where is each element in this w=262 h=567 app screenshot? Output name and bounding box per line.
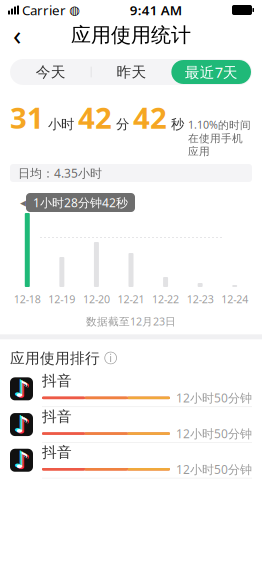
staticText: 抖音 — [42, 408, 72, 426]
staticText: 12小时50分钟 — [176, 426, 252, 441]
staticText: 1小时28分钟42秒 — [33, 194, 128, 210]
button[interactable]: ♪ — [10, 371, 252, 407]
staticText: 31 — [10, 98, 44, 137]
staticText: 12小时50分钟 — [176, 390, 252, 406]
button[interactable]: 最近7天 — [171, 60, 251, 84]
staticText: 12-24 — [221, 292, 248, 306]
staticText: ♪ — [13, 375, 27, 401]
staticText: ♪ — [14, 447, 28, 473]
staticText: 抖音 — [42, 372, 72, 390]
button[interactable]: Back — [0, 20, 34, 50]
staticText: ♪ — [13, 411, 27, 436]
staticText: 应用使用统计 — [71, 23, 191, 47]
staticText: ♪ — [14, 412, 28, 437]
staticText: 最近7天 — [185, 62, 238, 82]
staticText: ♪ — [16, 448, 30, 474]
button[interactable]: About app usage ranking — [104, 350, 117, 367]
staticText: ◍ — [69, 3, 79, 17]
staticText: ◂ — [20, 196, 26, 209]
staticText: 12-21 — [117, 292, 144, 306]
staticText: 12-19 — [48, 292, 75, 306]
staticText: 秒 — [167, 116, 188, 133]
staticText: 今天 — [36, 63, 66, 81]
staticText: 昨天 — [116, 63, 146, 81]
staticText: 12-22 — [152, 292, 179, 306]
staticText: 42 — [78, 98, 112, 137]
staticText: 12-20 — [83, 292, 110, 306]
staticText: 分 — [112, 116, 133, 133]
staticText: 数据截至12月23日 — [86, 314, 176, 328]
staticText: 1.10%的时间在使用手机应用 — [188, 118, 251, 158]
staticText: 12-23 — [187, 292, 214, 306]
button[interactable]: 今天 — [11, 60, 91, 84]
staticText: 应用使用排行 — [10, 349, 100, 367]
staticText: 抖音 — [42, 443, 72, 461]
staticText: ♪ — [16, 413, 30, 438]
staticText: 42 — [133, 98, 167, 137]
button[interactable]: ♪ — [10, 443, 252, 478]
button[interactable]: ♪ — [10, 407, 252, 443]
staticText: ♪ — [16, 377, 30, 403]
staticText: ♪ — [13, 446, 27, 472]
staticText: ⓘ — [104, 350, 117, 367]
staticText: ‹ — [13, 17, 21, 53]
staticText: 小时 — [44, 116, 78, 133]
staticText: Carrier — [22, 1, 66, 19]
staticText: ♪ — [14, 376, 28, 402]
staticText: 12小时50分钟 — [176, 461, 252, 477]
staticText: 12-18 — [14, 292, 41, 306]
staticText: 日均：4.35小时 — [18, 165, 102, 181]
button[interactable]: 昨天 — [92, 60, 171, 84]
staticText: 9:41 AM — [130, 1, 182, 19]
